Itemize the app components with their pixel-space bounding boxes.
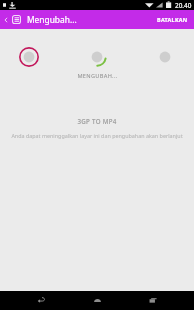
staticText: BATALKAN <box>157 16 188 23</box>
button[interactable]: Back <box>26 291 56 310</box>
staticText: MENGUBAH... <box>77 72 118 80</box>
button[interactable]: Home <box>82 291 112 310</box>
staticText: 20.40 <box>175 1 192 10</box>
button[interactable]: BATALKAN <box>151 10 194 29</box>
button[interactable]: Step <box>18 46 40 68</box>
staticText: Mengubah... <box>27 14 77 25</box>
button[interactable]: Step <box>154 46 176 68</box>
button[interactable]: Recent apps <box>138 291 168 310</box>
staticText: Anda dapat meninggalkan layar ini dan pe… <box>11 132 183 139</box>
button[interactable]: Navigate up <box>0 10 11 29</box>
staticText: 3GP TO MP4 <box>77 117 117 125</box>
button[interactable]: Step <box>86 46 108 68</box>
